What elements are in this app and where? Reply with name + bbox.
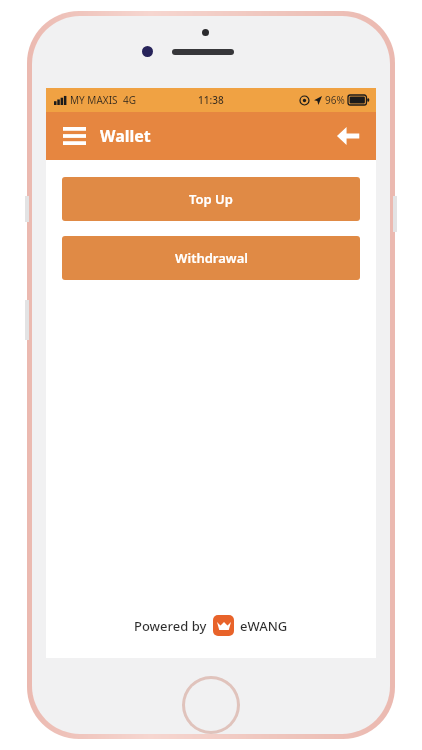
staticText: eWANG xyxy=(240,617,288,635)
button[interactable]: Back xyxy=(328,116,368,156)
staticText: 11:38 xyxy=(198,93,224,107)
staticText: Wallet xyxy=(100,125,151,147)
button[interactable]: Menu xyxy=(54,116,94,156)
staticText: 4G xyxy=(123,93,136,107)
staticText: Powered by xyxy=(134,617,207,635)
button[interactable]: Withdrawal xyxy=(62,236,360,280)
staticText: 96% xyxy=(325,93,345,107)
button[interactable]: Top Up xyxy=(62,177,360,221)
staticText: Top Up xyxy=(189,190,233,208)
staticText: MY MAXIS xyxy=(70,93,118,107)
staticText: Withdrawal xyxy=(175,249,248,267)
